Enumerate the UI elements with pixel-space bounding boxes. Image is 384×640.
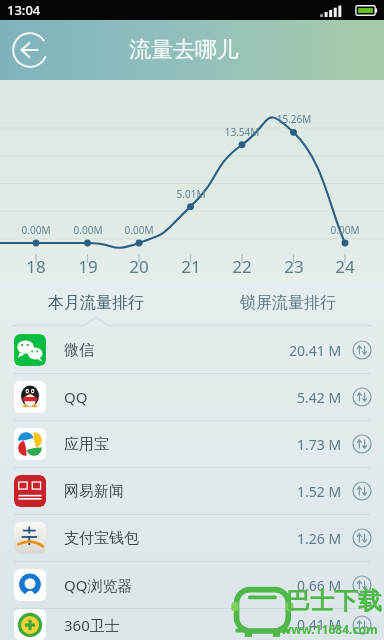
button[interactable]: Sync [352,340,372,360]
other: Sync [352,528,372,548]
button[interactable]: Sync [352,434,372,454]
staticText: 19 [70,255,106,278]
button[interactable]: 锁屏流量排行 [192,285,384,327]
other: Sync [352,575,372,595]
staticText: 应用宝 [64,435,297,454]
other: Sync [352,481,372,501]
staticText: 流量去哪儿 [129,36,239,64]
staticText: 1.52 M [297,482,342,501]
staticText: 18 [18,255,54,278]
staticText: 24 [327,255,363,278]
button[interactable]: Back [11,31,49,69]
staticText: 5.42 M [297,388,342,407]
staticText: 21 [173,255,209,278]
staticText: 0.41 M [297,615,342,634]
staticText: 360卫士 [64,615,297,635]
staticText: 0.00M [65,223,111,237]
button[interactable]: 网易新闻 [0,468,384,514]
staticText: 0.66 M [297,576,342,595]
staticText: 1.73 M [297,435,342,454]
staticText: 22 [224,255,260,278]
button[interactable]: Sync [352,528,372,548]
staticText: 支付宝钱包 [64,529,297,548]
button[interactable]: Sync [352,481,372,501]
button[interactable]: QQ [0,374,384,420]
staticText: QQ浏览器 [64,575,297,595]
button[interactable]: 360卫士 [0,609,384,640]
button[interactable]: QQ浏览器 [0,562,384,608]
staticText: 20 [121,255,157,278]
staticText: 微信 [64,341,289,360]
other: Sync [352,434,372,454]
staticText: 巴士下载 [286,586,382,616]
staticText: 5.01M [168,187,214,201]
staticText: 本月流量排行 [48,293,144,313]
button[interactable]: 微信 [0,327,384,373]
button[interactable]: 应用宝 [0,421,384,467]
staticText: 锁屏流量排行 [240,293,336,313]
staticText: 13.54M [219,125,265,139]
staticText: 13:04 [7,1,41,19]
staticText: 15.26M [271,112,317,126]
staticText: www.11684.com [281,621,378,637]
staticText: 20.41 M [289,341,342,360]
staticText: 1.26 M [297,529,342,548]
staticText: 0.00M [322,223,368,237]
other: Sync [352,340,372,360]
other: Sync [352,615,372,635]
button[interactable]: Sync [352,615,372,635]
staticText: 23 [276,255,312,278]
button[interactable]: 支付宝钱包 [0,515,384,561]
staticText: 网易新闻 [64,482,297,501]
staticText: 0.00M [13,223,59,237]
other: Sync [352,387,372,407]
button[interactable]: 本月流量排行 [0,285,192,327]
staticText: QQ [64,387,297,407]
staticText: 0.00M [116,223,162,237]
button[interactable]: Sync [352,387,372,407]
button[interactable]: Sync [352,575,372,595]
